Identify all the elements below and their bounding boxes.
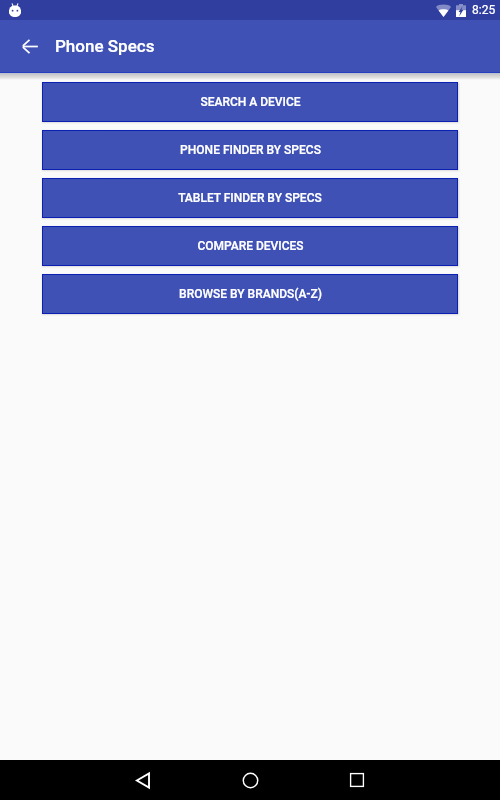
button[interactable]: PHONE FINDER BY SPECS xyxy=(42,130,458,170)
staticText: TABLET FINDER BY SPECS xyxy=(178,191,322,205)
button[interactable]: Recent apps xyxy=(337,760,377,800)
button[interactable]: Back xyxy=(123,760,163,800)
staticText: 8:25 xyxy=(472,3,496,17)
staticText: COMPARE DEVICES xyxy=(197,239,304,253)
staticText: SEARCH A DEVICE xyxy=(200,95,301,109)
staticText: Phone Specs xyxy=(55,36,155,56)
button[interactable]: TABLET FINDER BY SPECS xyxy=(42,178,458,218)
button[interactable]: COMPARE DEVICES xyxy=(42,226,458,266)
button[interactable]: SEARCH A DEVICE xyxy=(42,82,458,122)
button[interactable]: Home xyxy=(230,760,270,800)
staticText: PHONE FINDER BY SPECS xyxy=(180,143,321,157)
button[interactable]: Back xyxy=(16,32,44,60)
staticText: BROWSE BY BRANDS(A-Z) xyxy=(179,287,322,301)
button[interactable]: BROWSE BY BRANDS(A-Z) xyxy=(42,274,458,314)
